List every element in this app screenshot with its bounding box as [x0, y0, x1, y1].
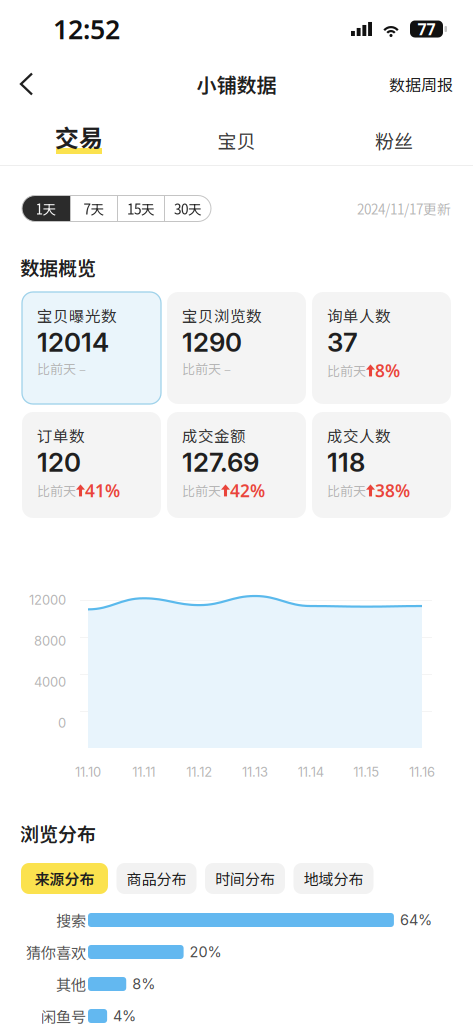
staticText: 时间分布	[215, 868, 275, 889]
button[interactable]: 时间分布	[205, 863, 285, 894]
staticText: 41%	[85, 479, 120, 502]
staticText: 15天	[127, 199, 155, 218]
button[interactable]: 7天	[71, 195, 117, 221]
staticText: 询单人数	[327, 304, 391, 326]
staticText: 粉丝	[375, 126, 413, 154]
button[interactable]: 地域分布	[293, 863, 373, 894]
button[interactable]: 订单数	[22, 412, 161, 518]
staticText: 商品分布	[126, 868, 186, 889]
staticText: 搜索	[56, 909, 86, 931]
button[interactable]: 返回	[0, 59, 50, 108]
staticText: 比前天	[182, 481, 221, 500]
staticText: –	[221, 359, 231, 378]
staticText: 4000	[34, 674, 66, 690]
button[interactable]: 成交人数	[312, 412, 451, 518]
staticText: 宝贝曝光数	[37, 304, 117, 326]
button[interactable]: 15天	[118, 195, 164, 221]
staticText: 订单数	[37, 424, 85, 446]
staticText: 数据周报	[389, 72, 453, 96]
staticText: 11.11	[132, 764, 155, 780]
staticText: 比前天	[37, 481, 76, 500]
button[interactable]: 询单人数	[312, 292, 451, 404]
staticText: 4%	[113, 1007, 136, 1024]
staticText: 12000	[29, 592, 66, 608]
button[interactable]: 宝贝曝光数	[22, 292, 161, 404]
button[interactable]: 粉丝	[315, 110, 473, 165]
button[interactable]: 来源分布	[21, 863, 108, 894]
staticText: 数据概览	[20, 253, 96, 281]
staticText: 1290	[182, 326, 242, 358]
staticText: 11.16	[409, 764, 435, 780]
staticText: 比前天	[37, 359, 76, 378]
staticText: 77	[417, 18, 435, 40]
staticText: 宝贝	[217, 126, 255, 154]
staticText: 宝贝浏览数	[182, 304, 262, 326]
staticText: 1天	[35, 199, 56, 218]
staticText: 37	[327, 326, 358, 358]
staticText: 其他	[56, 973, 86, 995]
button[interactable]: 成交金额	[167, 412, 306, 518]
button[interactable]: 宝贝	[158, 110, 315, 165]
staticText: 42%	[230, 479, 265, 502]
staticText: 交易	[55, 119, 103, 154]
staticText: 11.14	[298, 764, 324, 780]
staticText: 来源分布	[34, 868, 94, 889]
staticText: 比前天	[327, 481, 366, 500]
staticText: 7天	[83, 199, 104, 218]
staticText: 8%	[375, 359, 400, 382]
staticText: 64%	[400, 911, 432, 929]
staticText: 118	[327, 446, 365, 478]
staticText: 20%	[190, 943, 222, 961]
staticText: 8000	[34, 633, 66, 649]
button[interactable]: 数据周报	[371, 58, 473, 110]
staticText: 比前天	[327, 361, 366, 380]
staticText: 猜你喜欢	[26, 941, 86, 963]
staticText: 闲鱼号	[41, 1005, 86, 1024]
staticText: –	[76, 359, 86, 378]
button[interactable]: 宝贝浏览数	[167, 292, 306, 404]
staticText: 地域分布	[303, 868, 363, 889]
staticText: 2024/11/17更新	[357, 199, 451, 218]
staticText: 成交人数	[327, 424, 391, 446]
staticText: 0	[58, 715, 66, 731]
staticText: 比前天	[182, 359, 221, 378]
staticText: 11.10	[75, 764, 101, 780]
staticText: 浏览分布	[20, 819, 96, 847]
button[interactable]: 1天	[22, 195, 70, 221]
button[interactable]: 交易	[0, 110, 158, 165]
staticText: 小铺数据	[196, 69, 276, 98]
staticText: 11.12	[186, 764, 212, 780]
staticText: 11.15	[353, 764, 379, 780]
staticText: 30天	[174, 199, 202, 218]
staticText: 11.13	[242, 764, 268, 780]
staticText: 38%	[375, 479, 410, 502]
button[interactable]: 商品分布	[116, 863, 196, 894]
button[interactable]: 30天	[165, 195, 211, 221]
staticText: 12:52	[53, 11, 120, 47]
staticText: 120	[37, 446, 81, 478]
staticText: 127.69	[182, 446, 259, 478]
staticText: 成交金额	[182, 424, 246, 446]
staticText: 12014	[37, 326, 109, 358]
staticText: 8%	[132, 975, 155, 993]
